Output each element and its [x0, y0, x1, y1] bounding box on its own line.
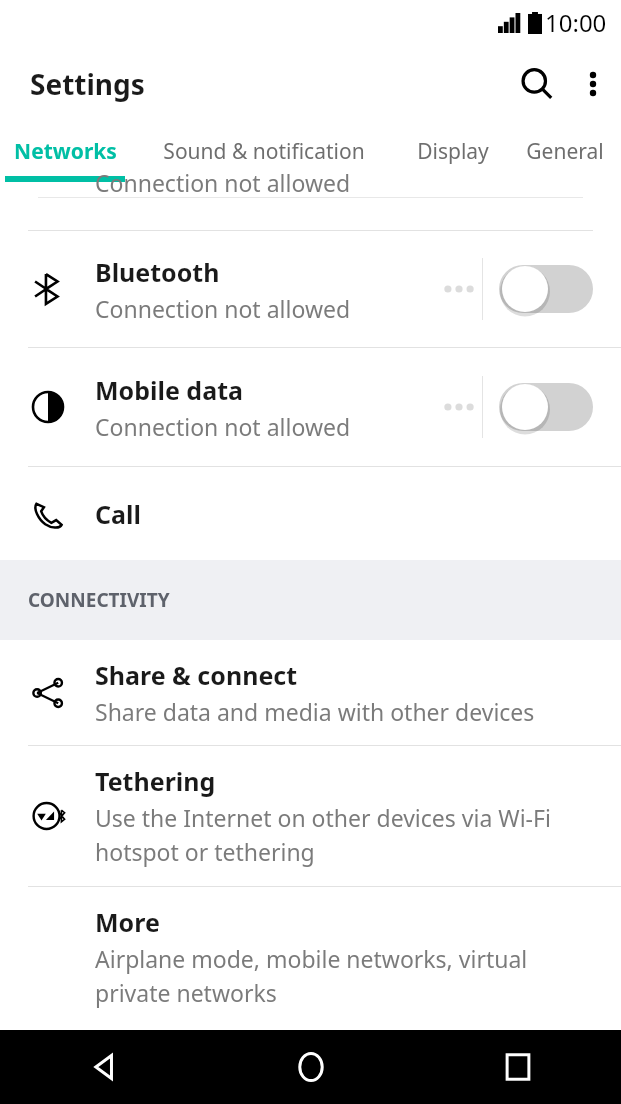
staticText: Settings [30, 65, 145, 103]
staticText: 10:00 [545, 6, 607, 39]
button[interactable]: General [508, 123, 621, 185]
button[interactable]: Sound & notification [130, 123, 398, 185]
button[interactable]: More [0, 887, 621, 1027]
staticText: Connection not allowed [95, 167, 351, 198]
staticText: Mobile data [95, 373, 243, 407]
staticText: Airplane mode, mobile networks, virtual … [95, 943, 561, 1009]
staticText: Use the Internet on other devices via Wi… [95, 802, 561, 868]
button[interactable]: Recents [414, 1030, 621, 1104]
button[interactable]: Display [398, 123, 508, 185]
staticText: Sound & notification [163, 137, 365, 166]
button[interactable]: Home [207, 1030, 414, 1104]
staticText: Bluetooth [95, 255, 220, 289]
button[interactable]: Tethering [0, 746, 621, 886]
staticText: General [526, 137, 604, 166]
staticText: CONNECTIVITY [28, 587, 170, 613]
button[interactable]: Mobile data toggle [499, 381, 593, 433]
button[interactable]: Search [509, 56, 565, 112]
staticText: Tethering [95, 764, 216, 798]
staticText: More [95, 905, 160, 939]
button[interactable]: Call [0, 467, 621, 560]
staticText: Display [417, 137, 489, 166]
button[interactable]: Mobile data [0, 348, 621, 466]
button[interactable]: Bluetooth [0, 231, 621, 347]
staticText: Connection not allowed [95, 293, 351, 324]
button[interactable]: Bluetooth toggle [499, 263, 593, 315]
button[interactable]: Networks [0, 123, 130, 185]
staticText: Share data and media with other devices [95, 696, 535, 727]
button[interactable]: Bluetooth options [436, 266, 482, 312]
button[interactable]: More options [565, 56, 621, 112]
staticText: Connection not allowed [95, 411, 351, 442]
button[interactable]: Share & connect [0, 640, 621, 745]
button[interactable]: Mobile data options [436, 384, 482, 430]
staticText: Call [95, 497, 141, 531]
staticText: Share & connect [95, 658, 298, 692]
staticText: Networks [14, 137, 117, 166]
button[interactable]: Back [0, 1030, 207, 1104]
